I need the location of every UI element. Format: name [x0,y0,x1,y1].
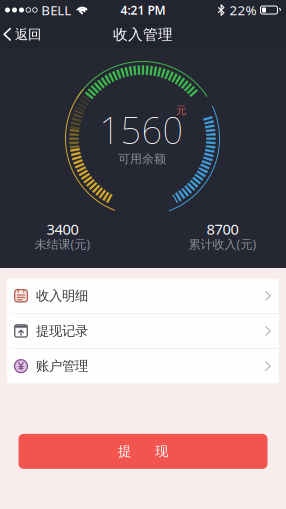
staticText: 提现记录 [36,323,88,339]
staticText: 1560 [99,106,183,154]
staticText: 元 [176,104,187,117]
staticText: 4:21 PM [120,2,165,18]
button[interactable]: 提 现 [18,434,267,469]
staticText: 收入明细 [36,288,88,304]
staticText: BELL [41,1,71,19]
staticText: 账户管理 [36,358,88,374]
button[interactable]: 提现记录 [7,314,279,348]
staticText: 累计收入(元) [188,236,256,252]
staticText: 未结课(元) [34,236,90,252]
button[interactable]: 返回 [0,26,41,43]
staticText: 提 现 [118,443,168,460]
button[interactable]: 账户管理 [7,349,279,383]
button[interactable]: 收入明细 [7,278,279,313]
staticText: 返回 [15,26,41,43]
staticText: 可用余额 [118,152,166,166]
staticText: 收入管理 [113,25,173,43]
staticText: 22% [229,1,256,19]
staticText: 8700 [206,219,238,239]
staticText: 3400 [46,219,78,239]
